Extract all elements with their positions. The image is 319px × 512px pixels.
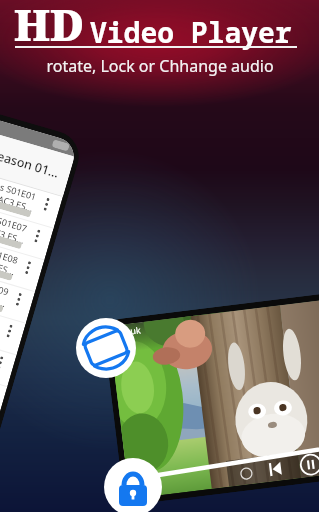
staticText: AC3 ES...: [0, 287, 7, 309]
button[interactable]: Rotate screen: [76, 318, 136, 378]
staticText: rotate, Lock or Chhange audio: [46, 55, 274, 77]
staticText: 1E08: [0, 248, 20, 266]
staticText: S01E09: [0, 277, 11, 298]
staticText: s S01E07: [0, 212, 29, 234]
staticText: S01E10: [0, 309, 1, 329]
staticText: ies Season 01...: [0, 140, 62, 182]
staticText: x264 AC3 ES...: [0, 186, 35, 214]
staticText: ones S01E01: [0, 176, 38, 203]
staticText: bigbuk: [111, 323, 142, 339]
staticText: AC3 ES...: [0, 224, 26, 246]
staticText: 3 ES...: [0, 259, 17, 277]
button[interactable]: Lock screen: [104, 458, 162, 512]
staticText: Video Player: [90, 13, 292, 51]
staticText: HD: [14, 0, 85, 54]
